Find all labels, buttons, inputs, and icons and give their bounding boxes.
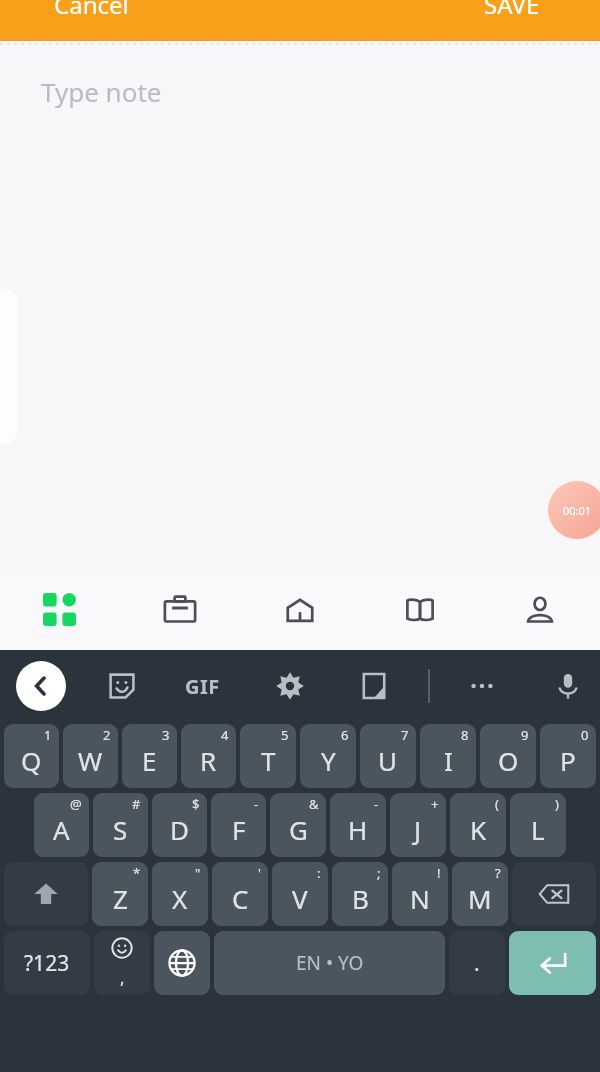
staticText: 4 bbox=[221, 726, 229, 744]
button[interactable]: . bbox=[449, 931, 505, 995]
button[interactable]: GIF bbox=[176, 660, 228, 712]
staticText: + bbox=[431, 795, 439, 813]
staticText: 00:01 bbox=[563, 503, 592, 518]
button[interactable]: Clipboard bbox=[348, 660, 400, 712]
button[interactable]: Settings bbox=[264, 660, 316, 712]
staticText: M bbox=[468, 881, 492, 916]
button[interactable]: Shift bbox=[4, 862, 88, 926]
button[interactable]: Profile bbox=[480, 570, 600, 650]
button[interactable]: EN • YO bbox=[214, 931, 445, 995]
staticText: Type note bbox=[41, 74, 162, 109]
staticText: W bbox=[78, 743, 103, 778]
staticText: X bbox=[172, 881, 188, 916]
staticText: : bbox=[317, 864, 321, 882]
button[interactable]: Enter bbox=[509, 931, 596, 995]
staticText: D bbox=[170, 812, 189, 847]
staticText: . bbox=[474, 949, 480, 978]
button[interactable]: ( bbox=[450, 793, 506, 857]
staticText: 9 bbox=[521, 726, 529, 744]
button[interactable]: Stickers bbox=[96, 660, 148, 712]
staticText: $ bbox=[192, 795, 200, 813]
button[interactable]: ' bbox=[212, 862, 268, 926]
button[interactable]: - bbox=[330, 793, 386, 857]
staticText: V bbox=[292, 881, 308, 916]
button[interactable]: Emoji bbox=[94, 931, 150, 995]
staticText: R bbox=[200, 743, 217, 778]
staticText: ! bbox=[437, 864, 441, 882]
staticText: @ bbox=[70, 795, 82, 813]
button[interactable]: 9 bbox=[480, 724, 536, 788]
staticText: I bbox=[444, 743, 453, 778]
staticText: GIF bbox=[185, 673, 220, 700]
button[interactable]: Backspace bbox=[512, 862, 596, 926]
button[interactable]: 0 bbox=[540, 724, 596, 788]
staticText: T bbox=[261, 743, 276, 778]
staticText: 0 bbox=[581, 726, 589, 744]
button[interactable]: 7 bbox=[360, 724, 416, 788]
button[interactable]: 2 bbox=[63, 724, 118, 788]
button[interactable]: # bbox=[93, 793, 148, 857]
button[interactable]: ! bbox=[392, 862, 448, 926]
button[interactable]: 3 bbox=[122, 724, 177, 788]
button[interactable]: - bbox=[211, 793, 266, 857]
button[interactable]: 1 bbox=[4, 724, 59, 788]
button[interactable]: @ bbox=[34, 793, 89, 857]
staticText: F bbox=[232, 812, 246, 847]
staticText: G bbox=[289, 812, 308, 847]
staticText: Z bbox=[113, 881, 128, 916]
staticText: ; bbox=[377, 864, 381, 882]
button[interactable]: 4 bbox=[181, 724, 236, 788]
staticText: ? bbox=[495, 864, 501, 882]
staticText: 5 bbox=[281, 726, 289, 744]
staticText: 8 bbox=[461, 726, 469, 744]
button[interactable]: SAVE bbox=[478, 0, 546, 25]
button[interactable]: 5 bbox=[240, 724, 296, 788]
button[interactable]: Library bbox=[360, 570, 480, 650]
button[interactable]: Apps bbox=[0, 570, 120, 650]
button[interactable]: Cancel bbox=[48, 0, 135, 25]
button[interactable]: Voice input bbox=[542, 660, 594, 712]
button[interactable]: 6 bbox=[300, 724, 356, 788]
staticText: B bbox=[352, 881, 369, 916]
button[interactable]: ) bbox=[510, 793, 566, 857]
staticText: U bbox=[378, 743, 398, 778]
staticText: P bbox=[560, 743, 576, 778]
button[interactable]: * bbox=[92, 862, 148, 926]
button[interactable]: " bbox=[152, 862, 208, 926]
staticText: SAVE bbox=[484, 0, 540, 21]
staticText: ' bbox=[258, 864, 261, 882]
staticText: Cancel bbox=[54, 0, 129, 21]
button[interactable]: Work bbox=[120, 570, 240, 650]
staticText: A bbox=[53, 812, 70, 847]
button[interactable]: Back bbox=[16, 661, 66, 711]
button[interactable]: + bbox=[390, 793, 446, 857]
button[interactable]: ; bbox=[332, 862, 388, 926]
button[interactable]: Change language bbox=[154, 931, 210, 995]
button[interactable]: Home bbox=[240, 570, 360, 650]
staticText: J bbox=[414, 812, 422, 847]
button[interactable]: Recording timer bbox=[548, 481, 600, 539]
staticText: # bbox=[132, 795, 141, 813]
staticText: - bbox=[254, 795, 259, 813]
staticText: EN • YO bbox=[296, 950, 364, 976]
button[interactable]: : bbox=[272, 862, 328, 926]
staticText: Q bbox=[21, 743, 42, 778]
staticText: - bbox=[374, 795, 379, 813]
button[interactable]: & bbox=[270, 793, 326, 857]
staticText: H bbox=[348, 812, 368, 847]
staticText: O bbox=[498, 743, 519, 778]
button[interactable]: More options bbox=[456, 660, 508, 712]
button[interactable]: ? bbox=[452, 862, 508, 926]
staticText: ( bbox=[495, 795, 499, 813]
staticText: N bbox=[410, 881, 430, 916]
staticText: 2 bbox=[103, 726, 111, 744]
button[interactable]: $ bbox=[152, 793, 207, 857]
staticText: " bbox=[195, 864, 201, 882]
staticText: * bbox=[133, 864, 141, 882]
staticText: ?123 bbox=[24, 949, 70, 978]
staticText: Y bbox=[321, 743, 336, 778]
button[interactable]: ?123 bbox=[4, 931, 90, 995]
staticText: 1 bbox=[44, 726, 52, 744]
button[interactable]: 8 bbox=[420, 724, 476, 788]
staticText: E bbox=[142, 743, 157, 778]
